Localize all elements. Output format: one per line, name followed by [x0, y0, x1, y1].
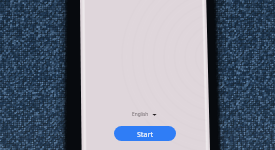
staticText: English [132, 111, 149, 118]
staticText: Start [137, 130, 154, 140]
button[interactable]: English [130, 109, 156, 120]
button[interactable]: Start [114, 126, 176, 141]
